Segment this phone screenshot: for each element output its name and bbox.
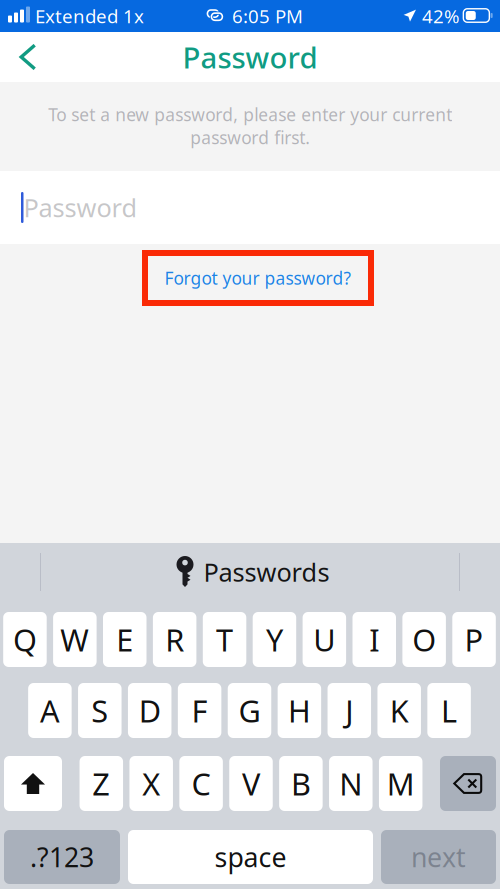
button[interactable]: H (278, 683, 321, 738)
button[interactable]: space (128, 830, 373, 884)
staticText: W (60, 619, 89, 660)
staticText: .?123 (30, 839, 94, 875)
staticText: V (242, 763, 260, 804)
staticText: Extended 1x (35, 4, 144, 28)
button[interactable]: Q (3, 612, 47, 667)
staticText: A (40, 690, 60, 731)
button[interactable]: E (103, 612, 146, 667)
staticText: S (91, 690, 108, 731)
staticText: Y (266, 619, 283, 660)
staticText: R (165, 619, 184, 660)
staticText: C (192, 763, 211, 804)
staticText: 6:05 PM (232, 4, 303, 28)
button[interactable]: Back (1, 32, 55, 82)
button[interactable]: .?123 (4, 830, 120, 884)
staticText: F (192, 690, 208, 731)
staticText: Z (92, 763, 110, 804)
staticText: P (464, 619, 483, 660)
button[interactable]: T (203, 612, 246, 667)
button[interactable]: Forgot your password? (142, 250, 374, 306)
staticText: J (345, 690, 353, 731)
button[interactable]: F (178, 683, 221, 738)
staticText: To set a new password, please enter your… (48, 103, 452, 149)
staticText: X (142, 763, 160, 804)
button[interactable]: G (228, 683, 271, 738)
staticText: H (288, 690, 311, 731)
button[interactable]: V (229, 756, 273, 811)
staticText: L (441, 690, 457, 731)
button[interactable]: M (379, 756, 422, 811)
staticText: Forgot your password? (164, 266, 351, 289)
button[interactable]: Shift (4, 756, 62, 811)
staticText: K (390, 690, 409, 731)
button[interactable]: X (129, 756, 173, 811)
button[interactable]: D (128, 683, 171, 738)
button[interactable]: K (377, 683, 421, 738)
staticText: G (238, 690, 260, 731)
button[interactable]: A (28, 683, 72, 738)
button[interactable]: Delete (440, 756, 496, 811)
staticText: M (387, 763, 415, 804)
staticText: 42% (422, 4, 460, 28)
staticText: B (291, 763, 311, 804)
button[interactable]: Y (253, 612, 296, 667)
staticText: Passwords (203, 555, 329, 589)
button[interactable]: S (78, 683, 122, 738)
button[interactable]: next (381, 830, 496, 884)
staticText: I (369, 619, 379, 660)
button[interactable]: R (153, 612, 196, 667)
staticText: T (216, 619, 233, 660)
staticText: U (313, 619, 335, 660)
button[interactable]: B (279, 756, 323, 811)
button[interactable]: C (179, 756, 223, 811)
staticText: D (139, 690, 161, 731)
button[interactable]: L (427, 683, 471, 738)
button[interactable]: P (452, 612, 496, 667)
staticText: Password (182, 37, 317, 76)
staticText: O (412, 619, 436, 660)
button[interactable]: J (327, 683, 371, 738)
button[interactable]: U (303, 612, 346, 667)
staticText: Q (13, 619, 37, 660)
staticText: Password (23, 191, 137, 224)
button[interactable]: O (402, 612, 446, 667)
button[interactable]: I (352, 612, 396, 667)
staticText: E (116, 619, 133, 660)
button[interactable]: N (329, 756, 373, 811)
staticText: N (339, 763, 362, 804)
staticText: space (214, 839, 286, 875)
staticText: next (411, 839, 466, 875)
button[interactable]: W (53, 612, 97, 667)
button[interactable]: Passwords (128, 550, 378, 594)
button[interactable]: Z (80, 756, 123, 811)
